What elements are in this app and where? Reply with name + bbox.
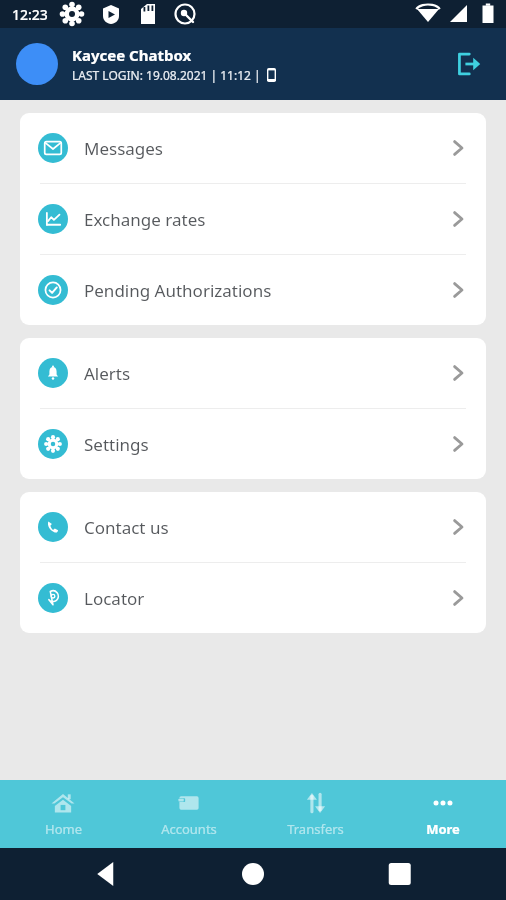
staticText: Settings	[84, 433, 448, 456]
staticText: 12:23	[12, 5, 48, 24]
staticText: Contact us	[84, 516, 448, 539]
staticText: Home	[45, 820, 82, 838]
button[interactable]: Home	[0, 780, 126, 848]
button[interactable]: Accounts	[126, 780, 252, 848]
staticText: Exchange rates	[84, 208, 448, 231]
staticText: Alerts	[84, 362, 448, 385]
button[interactable]: More	[379, 780, 506, 848]
staticText: Pending Authorizations	[84, 279, 448, 302]
button[interactable]: Transfers	[252, 780, 379, 848]
button[interactable]: Exchange rates	[20, 184, 486, 254]
button[interactable]: Pending Authorizations	[20, 255, 486, 325]
button[interactable]: Settings	[20, 409, 486, 479]
staticText: Locator	[84, 587, 448, 610]
staticText: Messages	[84, 137, 448, 160]
staticText: Accounts	[161, 820, 217, 838]
button[interactable]: Log out	[446, 42, 490, 86]
button[interactable]: Contact us	[20, 492, 486, 562]
button[interactable]: Locator	[20, 563, 486, 633]
staticText: Transfers	[287, 820, 344, 838]
staticText: LAST LOGIN: 19.08.2021 | 11:12 |	[72, 67, 261, 83]
button[interactable]: Messages	[20, 113, 486, 183]
staticText: Kaycee Chatbox	[72, 45, 192, 65]
button[interactable]: Alerts	[20, 338, 486, 408]
staticText: More	[426, 820, 460, 838]
